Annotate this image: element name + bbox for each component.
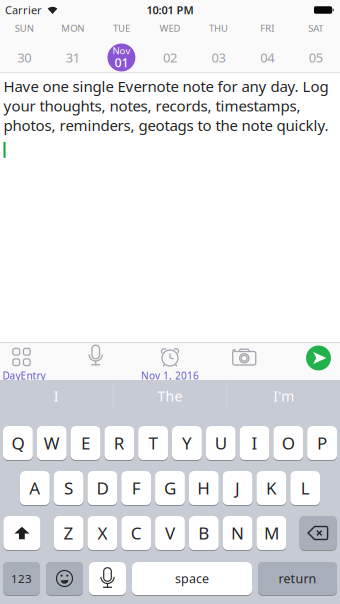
button[interactable]: 31 [49, 36, 97, 72]
staticText: A [29, 476, 40, 500]
staticText: L [301, 476, 310, 500]
staticText: 02 [163, 49, 177, 66]
button[interactable]: I [240, 426, 269, 461]
button[interactable]: R [104, 426, 134, 461]
staticText: C [131, 521, 142, 545]
button[interactable]: Nov 1, 2016 [156, 342, 184, 381]
staticText: X [97, 521, 107, 545]
button[interactable]: Q [3, 426, 33, 461]
staticText: 04 [260, 49, 274, 66]
button[interactable]: K [256, 471, 286, 506]
staticText: 30 [17, 49, 31, 66]
button[interactable]: P [307, 426, 337, 461]
button[interactable]: F [121, 471, 151, 506]
staticText: M [264, 521, 279, 545]
button[interactable]: Delete [300, 516, 337, 551]
button[interactable]: Camera [230, 342, 258, 381]
staticText: photos, reminders, geotags to the note q… [3, 115, 328, 135]
staticText: E [81, 431, 90, 455]
button[interactable]: Z [54, 516, 83, 551]
staticText: Y [182, 431, 192, 455]
staticText: B [198, 521, 209, 545]
button[interactable]: W [37, 426, 67, 461]
button[interactable]: The [114, 380, 226, 412]
button[interactable]: 05 [291, 36, 340, 72]
button[interactable]: H [189, 471, 219, 506]
staticText: TUE [113, 21, 130, 34]
button[interactable]: D [87, 471, 117, 506]
button[interactable]: Y [172, 426, 202, 461]
button[interactable]: Send [304, 342, 332, 381]
button[interactable]: X [87, 516, 117, 551]
button[interactable]: 04 [243, 36, 291, 72]
button[interactable]: I [0, 380, 113, 412]
staticText: Q [11, 431, 24, 455]
button[interactable]: V [155, 516, 185, 551]
staticText: return [278, 570, 316, 587]
button[interactable]: N [223, 516, 252, 551]
button[interactable]: G [155, 471, 185, 506]
staticText: The [157, 386, 182, 406]
staticText: S [64, 476, 73, 500]
staticText: W [44, 431, 60, 455]
button[interactable]: L [290, 471, 320, 506]
button[interactable]: Shift [3, 516, 40, 551]
staticText: space [175, 570, 209, 587]
staticText: Z [64, 521, 74, 545]
button[interactable]: space [132, 562, 252, 596]
button[interactable]: return [258, 562, 337, 596]
staticText: J [235, 476, 240, 500]
button[interactable]: DayEntry [7, 342, 35, 381]
staticText: 123 [11, 571, 32, 586]
staticText: FRI [260, 21, 274, 34]
button[interactable]: 03 [194, 36, 243, 72]
staticText: MON [61, 21, 84, 34]
button[interactable]: O [273, 426, 303, 461]
staticText: SUN [15, 21, 34, 34]
staticText: T [149, 431, 158, 455]
staticText: H [197, 476, 210, 500]
staticText: Nov 1, 2016 [141, 369, 199, 382]
staticText: I [54, 386, 59, 406]
staticText: 10:01 PM [146, 2, 193, 17]
button[interactable]: E [71, 426, 100, 461]
button[interactable]: B [189, 516, 219, 551]
button[interactable]: Nov [97, 36, 146, 72]
staticText: I [251, 431, 257, 455]
staticText: THU [209, 21, 228, 34]
staticText: 31 [66, 49, 80, 66]
button[interactable]: C [121, 516, 151, 551]
staticText: I'm [273, 386, 294, 406]
button[interactable]: T [138, 426, 168, 461]
staticText: SAT [308, 21, 323, 34]
button[interactable]: 123 [3, 562, 40, 596]
staticText: K [266, 476, 277, 500]
staticText: P [317, 431, 327, 455]
button[interactable]: I'm [227, 380, 340, 412]
staticText: F [132, 476, 141, 500]
staticText: WED [159, 21, 180, 34]
staticText: O [282, 431, 295, 455]
button[interactable]: Emoji [46, 562, 83, 596]
staticText: Have one single Evernote note for any da… [3, 76, 328, 96]
button[interactable]: Dictate [89, 562, 126, 596]
button[interactable]: J [223, 471, 252, 506]
staticText: 05 [309, 49, 323, 66]
staticText: DayEntry [2, 369, 45, 382]
button[interactable]: S [54, 471, 83, 506]
button[interactable]: 30 [0, 36, 49, 72]
staticText: 03 [212, 49, 226, 66]
staticText: D [96, 476, 108, 500]
staticText: V [165, 521, 175, 545]
staticText: your thoughts, notes, records, timestamp… [3, 95, 300, 116]
button[interactable]: 02 [146, 36, 194, 72]
button[interactable]: U [206, 426, 236, 461]
staticText: 01 [114, 54, 128, 71]
staticText: R [114, 431, 125, 455]
staticText: N [231, 521, 244, 545]
staticText: U [215, 431, 227, 455]
button[interactable]: M [256, 516, 286, 551]
button[interactable]: Dictate [82, 342, 110, 381]
button[interactable]: A [20, 471, 50, 506]
staticText: G [164, 476, 176, 500]
